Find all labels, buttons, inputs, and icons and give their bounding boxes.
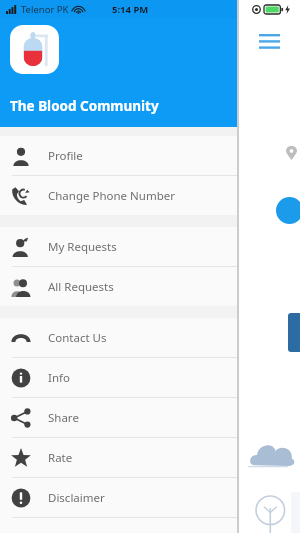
staticText: The Blood Community [10, 97, 159, 115]
staticText: All Requests [48, 279, 114, 295]
button[interactable]: My Requests [0, 227, 237, 266]
button[interactable]: Rate [0, 438, 237, 477]
staticText: Disclaimer [48, 490, 105, 506]
staticText: Contact Us [48, 330, 107, 346]
staticText: Telenor PK [21, 3, 69, 16]
button[interactable]: Contact Us [0, 318, 237, 357]
button[interactable]: Share [0, 398, 237, 437]
button[interactable]: Open navigation menu [252, 24, 286, 58]
staticText: Info [48, 370, 70, 386]
staticText: Rate [48, 450, 73, 466]
button[interactable]: Profile [0, 136, 237, 175]
staticText: Share [48, 410, 79, 426]
staticText: My Requests [48, 239, 117, 255]
button[interactable]: All Requests [0, 267, 237, 306]
button[interactable]: Location [277, 138, 300, 170]
button[interactable]: Change Phone Number [0, 176, 237, 215]
staticText: Profile [48, 148, 83, 164]
button[interactable]: Info [0, 358, 237, 397]
button[interactable]: Disclaimer [0, 478, 237, 517]
staticText: Change Phone Number [48, 188, 175, 204]
button[interactable]: Add request [276, 197, 300, 224]
staticText: 5:14 PM [112, 3, 149, 16]
